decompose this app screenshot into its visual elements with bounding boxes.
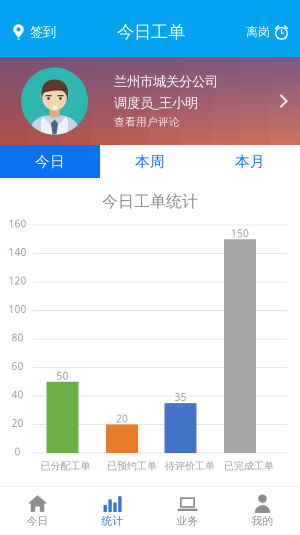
staticText: 20: [11, 416, 23, 430]
button[interactable]: 签到: [0, 12, 66, 52]
staticText: 签到: [30, 24, 56, 40]
staticText: 今日: [26, 514, 48, 527]
button[interactable]: 本周: [100, 145, 200, 178]
staticText: 50: [56, 369, 68, 382]
staticText: 统计: [101, 514, 123, 527]
button[interactable]: 今日: [0, 145, 100, 178]
button[interactable]: 业务: [150, 487, 225, 535]
staticText: 业务: [176, 514, 198, 527]
staticText: 已完成工单: [224, 460, 274, 472]
staticText: 0: [14, 445, 20, 458]
staticText: 查看用户评论: [114, 115, 180, 129]
staticText: 兰州市城关分公司: [114, 73, 218, 90]
staticText: 本月: [235, 152, 265, 170]
button[interactable]: 统计: [75, 487, 150, 535]
staticText: 120: [8, 274, 26, 287]
staticText: 100: [8, 302, 26, 316]
staticText: 已预约工单: [107, 460, 157, 472]
staticText: 离岗: [246, 25, 270, 39]
button[interactable]: 兰州市城关分公司: [0, 57, 300, 145]
staticText: 60: [11, 359, 23, 373]
staticText: 40: [11, 388, 23, 401]
staticText: 已分配工单: [40, 460, 90, 472]
staticText: 本周: [135, 152, 165, 170]
staticText: 今日: [35, 152, 65, 170]
staticText: 140: [8, 245, 26, 259]
staticText: 80: [11, 331, 23, 344]
button[interactable]: 今日: [0, 487, 75, 535]
staticText: 我的: [251, 514, 273, 527]
staticText: 160: [8, 217, 26, 230]
staticText: 20: [116, 412, 128, 425]
staticText: 150: [231, 226, 249, 240]
button[interactable]: 本月: [200, 145, 300, 178]
staticText: 35: [174, 390, 186, 404]
button[interactable]: 离岗: [236, 12, 300, 52]
staticText: 今日工单统计: [102, 192, 198, 211]
staticText: 今日工单: [117, 21, 185, 43]
staticText: 调度员_王小明: [114, 94, 198, 111]
staticText: 待评价工单: [165, 460, 215, 472]
button[interactable]: 我的: [225, 487, 300, 535]
